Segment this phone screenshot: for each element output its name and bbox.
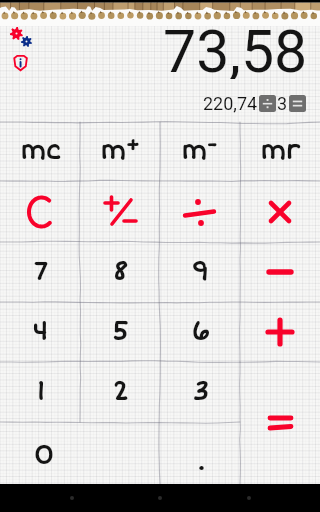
button[interactable]: 3 — [160, 362, 240, 422]
button[interactable]: 1 — [0, 362, 80, 422]
staticText: 220,74 — [203, 93, 258, 114]
staticText: 4 — [32, 316, 48, 348]
staticText: m — [100, 136, 126, 167]
button[interactable]: 6 — [160, 302, 240, 362]
staticText: . — [197, 446, 205, 478]
staticText: m — [181, 136, 207, 167]
staticText: − — [206, 131, 218, 159]
button[interactable]: Home — [143, 484, 177, 512]
staticText: 8 — [112, 256, 128, 288]
button[interactable]: 7 — [0, 242, 80, 302]
button[interactable]: m — [80, 122, 160, 181]
button[interactable]: 2 — [80, 362, 160, 422]
staticText: mc — [20, 136, 61, 167]
button[interactable]: 73,58 — [0, 17, 320, 79]
staticText: 1 — [36, 376, 45, 408]
button[interactable] — [240, 181, 320, 242]
button[interactable]: mc — [0, 122, 80, 181]
staticText: 5 — [111, 316, 129, 348]
button[interactable]: 4 — [0, 302, 80, 362]
button[interactable]: Back — [55, 484, 89, 512]
button[interactable]: m — [160, 122, 240, 181]
staticText: 2 — [112, 376, 129, 408]
staticText: mr — [260, 136, 300, 167]
staticText: 7 — [33, 256, 48, 288]
button[interactable]: mr — [240, 122, 320, 181]
button[interactable]: Recents — [232, 484, 266, 512]
button[interactable]: 9 — [160, 242, 240, 302]
button[interactable] — [240, 242, 320, 302]
staticText: 3 — [277, 93, 288, 114]
button[interactable]: 5 — [80, 302, 160, 362]
staticText: 0 — [33, 440, 54, 472]
button[interactable] — [240, 302, 320, 362]
button[interactable]: 0 — [0, 422, 160, 484]
button[interactable]: 8 — [80, 242, 160, 302]
staticText: 9 — [191, 256, 209, 288]
button[interactable] — [289, 95, 306, 112]
staticText: + — [125, 131, 140, 159]
button[interactable]: . — [160, 422, 240, 484]
button[interactable]: Info — [9, 52, 35, 78]
button[interactable] — [240, 362, 320, 484]
button[interactable] — [160, 181, 240, 242]
button[interactable] — [259, 95, 276, 112]
staticText: 73,58 — [163, 17, 308, 79]
button[interactable] — [80, 181, 160, 242]
button[interactable] — [0, 181, 80, 242]
button[interactable]: Settings — [6, 25, 36, 55]
staticText: 6 — [191, 316, 210, 348]
staticText: 3 — [192, 376, 209, 408]
